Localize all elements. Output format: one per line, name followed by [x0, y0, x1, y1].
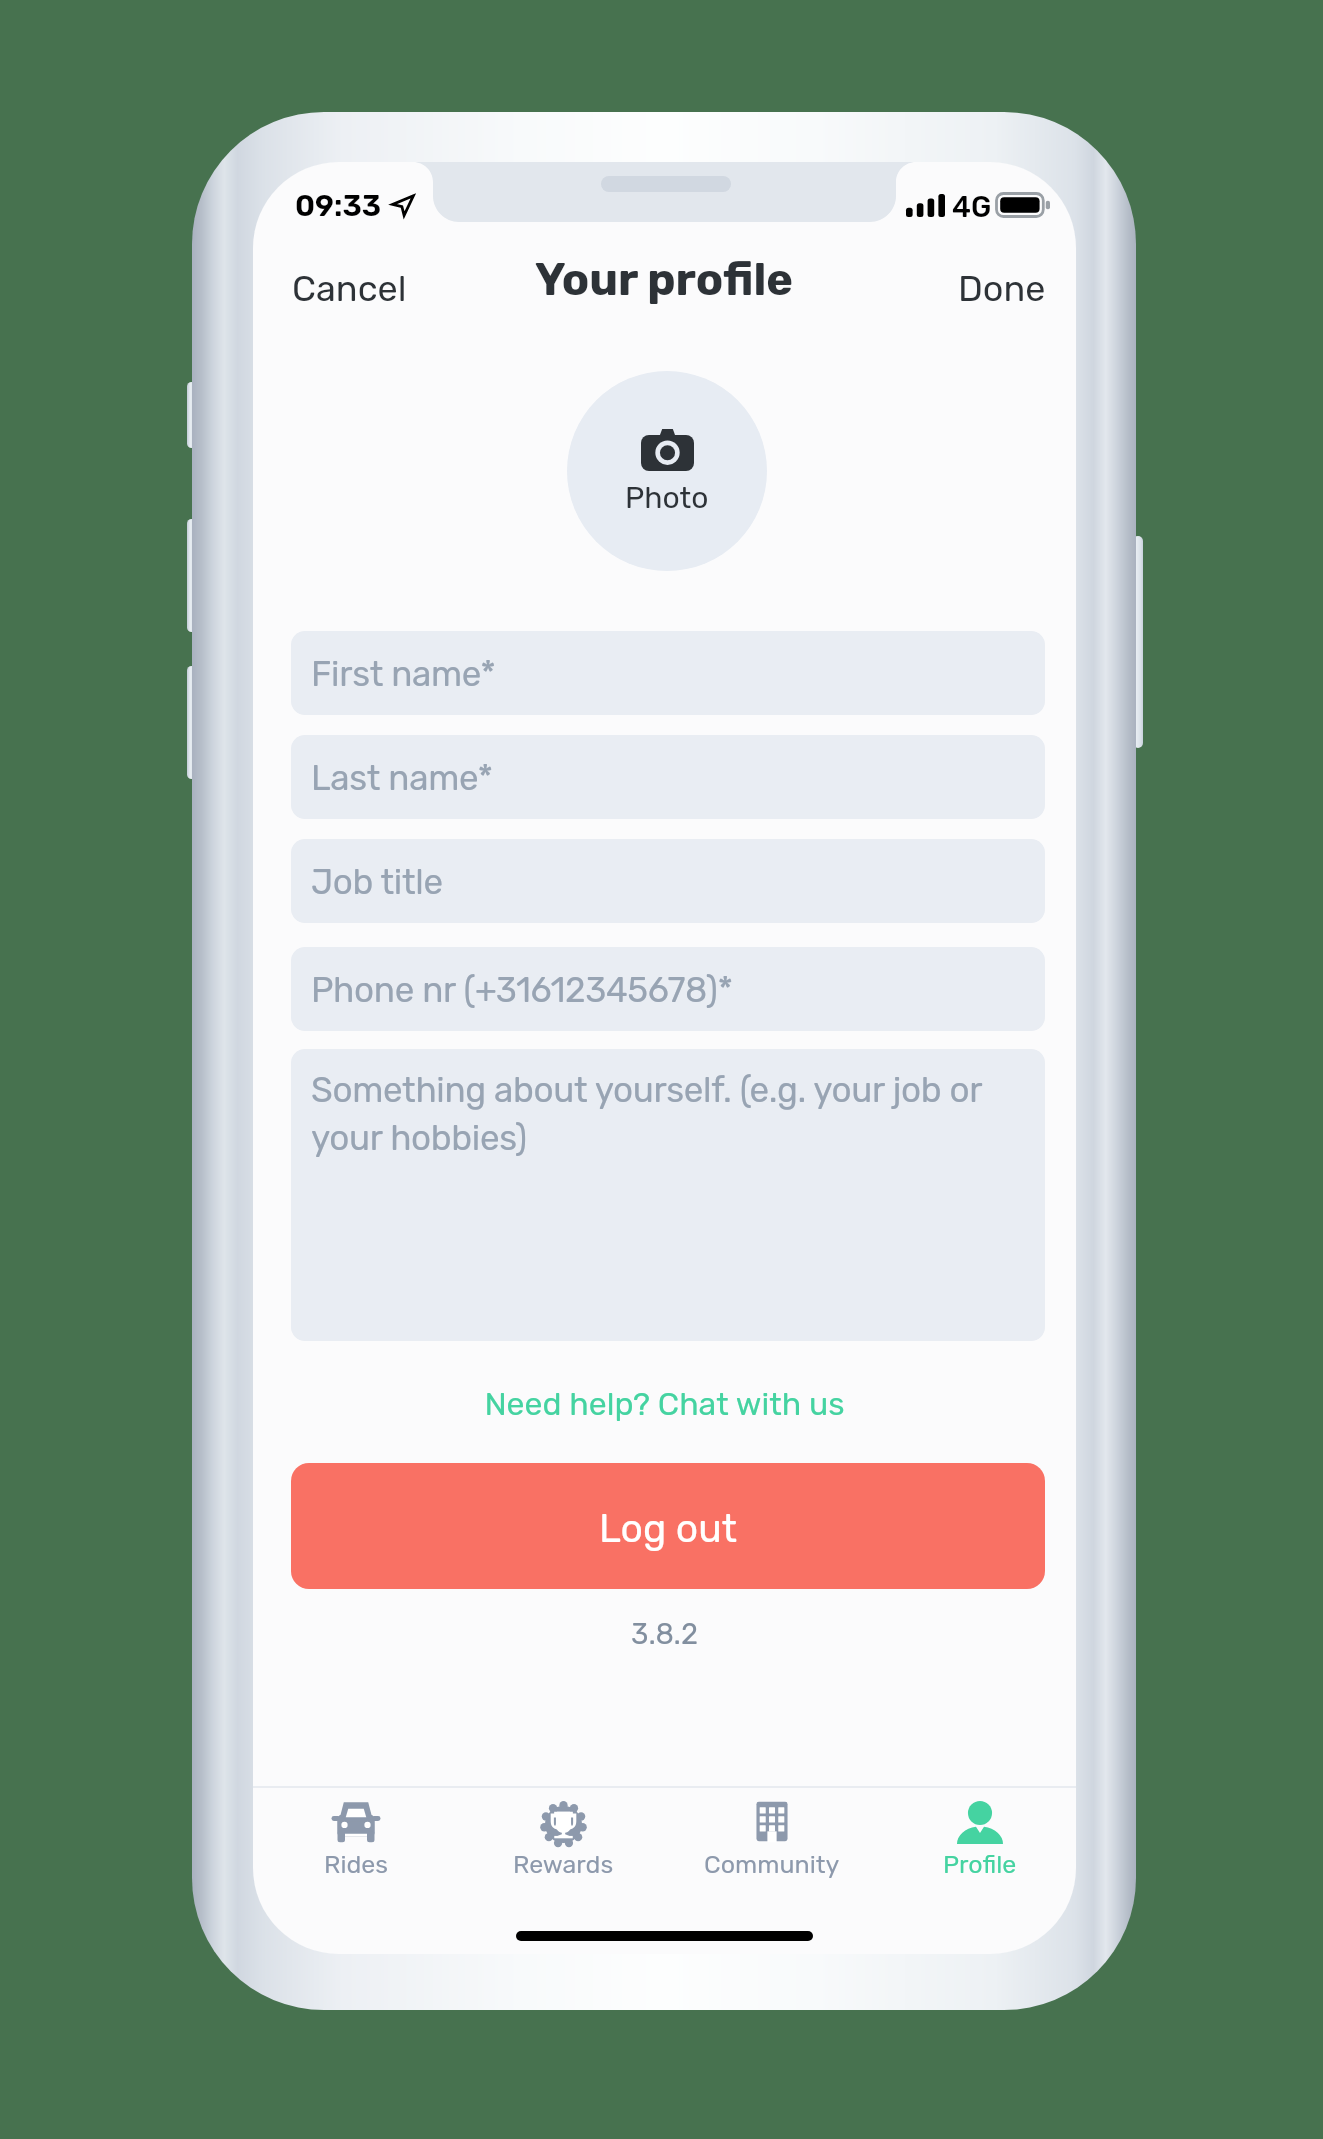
staticText: Community — [704, 1850, 840, 1880]
staticText: Last name* — [311, 757, 493, 798]
staticText: Something about yourself. (e.g. your job… — [311, 1069, 1025, 1159]
button[interactable]: Add photo — [567, 371, 767, 571]
staticText: 09:33 — [295, 188, 382, 224]
staticText: Rewards — [513, 1850, 614, 1880]
staticText: Rides — [324, 1850, 389, 1880]
button[interactable]: Rides — [256, 1795, 456, 1880]
button[interactable]: Something about yourself. (e.g. your job… — [291, 1049, 1045, 1341]
staticText: Cancel — [292, 267, 407, 310]
button[interactable]: Job title — [291, 839, 1045, 923]
staticText: Log out — [599, 1506, 737, 1552]
button[interactable]: First name* — [291, 631, 1045, 715]
staticText: Job title — [311, 861, 443, 902]
staticText: Done — [958, 267, 1046, 310]
staticText: 3.8.2 — [631, 1617, 698, 1651]
button[interactable]: Rewards — [463, 1795, 663, 1880]
staticText: Profile — [943, 1850, 1017, 1880]
staticText: First name* — [311, 653, 496, 694]
button[interactable]: Community — [672, 1795, 872, 1880]
staticText: Phone nr (+31612345678)* — [311, 969, 733, 1010]
staticText: Your profile — [535, 253, 794, 306]
button[interactable]: Need help? Chat with us — [464, 1376, 865, 1432]
button[interactable]: Done — [940, 257, 1064, 320]
staticText: 4G — [952, 190, 992, 224]
button[interactable]: Phone nr (+31612345678)* — [291, 947, 1045, 1031]
button[interactable]: Last name* — [291, 735, 1045, 819]
staticText: Photo — [625, 480, 709, 516]
staticText: Need help? Chat with us — [484, 1385, 845, 1423]
button[interactable]: Log out — [291, 1463, 1045, 1589]
button[interactable]: Profile — [880, 1795, 1076, 1880]
button[interactable]: Cancel — [274, 257, 425, 320]
